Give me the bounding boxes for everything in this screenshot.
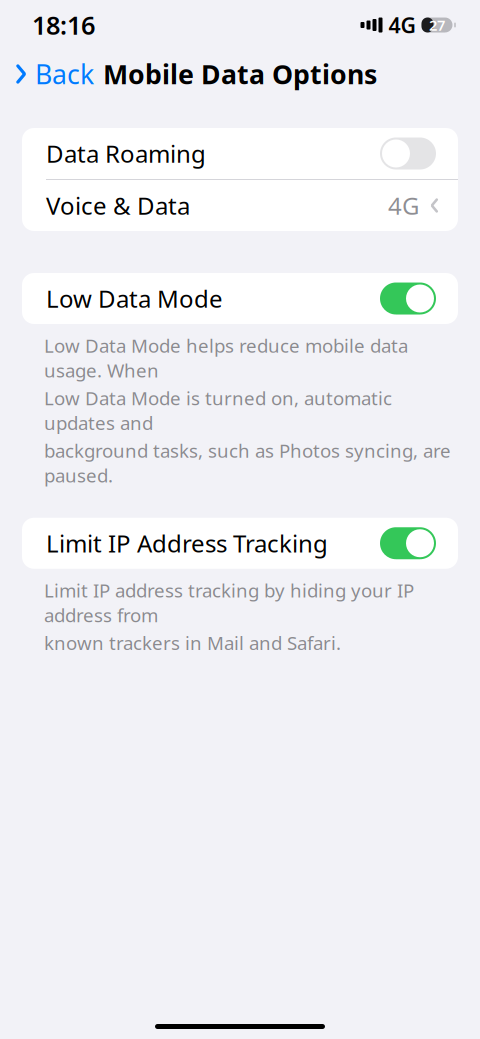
staticText: known trackers in Mail and Safari. xyxy=(44,630,341,655)
staticText: background tasks, such as Photos syncing… xyxy=(44,438,451,488)
button[interactable]: Limit IP Address Tracking xyxy=(22,518,458,569)
staticText: Limit IP address tracking by hiding your… xyxy=(44,578,414,627)
staticText: 18:16 xyxy=(32,8,95,42)
staticText: 4G xyxy=(388,11,415,39)
staticText: 27 xyxy=(429,15,445,35)
staticText: Data Roaming xyxy=(46,138,206,169)
button[interactable]: Voice & Data xyxy=(22,180,458,231)
staticText: Mobile Data Options xyxy=(103,56,377,92)
staticText: Back xyxy=(35,56,94,92)
button[interactable]: Low Data Mode xyxy=(22,273,458,324)
button[interactable]: Data Roaming xyxy=(22,128,458,179)
staticText: Low Data Mode is turned on, automatic up… xyxy=(44,386,392,435)
button[interactable]: Back xyxy=(0,50,104,98)
staticText: Low Data Mode helps reduce mobile data u… xyxy=(44,333,408,383)
staticText: Limit IP Address Tracking xyxy=(46,527,328,559)
staticText: Low Data Mode xyxy=(46,283,223,314)
staticText: 4G xyxy=(388,190,419,221)
staticText: Voice & Data xyxy=(46,190,190,221)
